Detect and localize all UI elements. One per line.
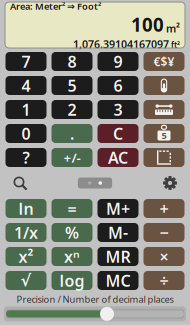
staticText: x² (18, 246, 33, 267)
button[interactable]: Area (143, 148, 184, 167)
staticText: − (159, 222, 168, 243)
button[interactable]: Weight (143, 124, 184, 143)
button[interactable]: 1/x (5, 223, 46, 242)
staticText: ÷ (159, 270, 168, 291)
button[interactable]: Settings (158, 174, 182, 192)
button[interactable]: MC (97, 271, 138, 290)
staticText: 100 (131, 12, 164, 37)
button[interactable]: ? (5, 148, 46, 167)
button[interactable]: + (143, 199, 184, 218)
button[interactable]: M+ (97, 199, 138, 218)
button[interactable]: xⁿ (51, 247, 92, 266)
staticText: xⁿ (64, 246, 80, 267)
staticText: ft² (171, 40, 180, 50)
staticText: 8 (67, 51, 76, 72)
staticText: 0 (21, 123, 30, 144)
staticText: 2 (67, 99, 76, 120)
button[interactable]: √ (5, 271, 46, 290)
staticText: 7 (21, 51, 30, 72)
button[interactable]: % (51, 223, 92, 242)
button[interactable]: €$¥ (143, 52, 184, 71)
staticText: % (65, 222, 79, 243)
staticText: MC (105, 270, 130, 291)
button[interactable]: 9 (97, 52, 138, 71)
button[interactable]: x² (5, 247, 46, 266)
staticText: Area: Meter² ⇒ Foot² (10, 0, 101, 12)
staticText: 5 (67, 75, 76, 96)
staticText: MR (105, 246, 130, 267)
staticText: C (113, 123, 123, 144)
staticText: log (59, 270, 84, 291)
button[interactable]: 7 (5, 52, 46, 71)
staticText: ? (22, 147, 29, 168)
button[interactable]: 6 (97, 76, 138, 95)
staticText: 6 (113, 75, 122, 96)
button[interactable]: × (143, 247, 184, 266)
button[interactable]: MR (97, 247, 138, 266)
staticText: = (67, 198, 76, 219)
button[interactable]: log (51, 271, 92, 290)
staticText: ln (18, 198, 33, 219)
staticText: 1 (21, 99, 30, 120)
staticText: 3 (113, 99, 122, 120)
button[interactable]: ÷ (143, 271, 184, 290)
button[interactable]: +/- (51, 148, 92, 167)
button[interactable]: . (51, 124, 92, 143)
staticText: €$¥ (153, 53, 174, 69)
button[interactable]: ln (5, 199, 46, 218)
staticText: Precision / Number of decimal places (16, 293, 173, 305)
button[interactable]: 3 (97, 100, 138, 119)
staticText: + (159, 198, 168, 219)
staticText: 1/x (14, 222, 38, 243)
button[interactable]: M- (97, 223, 138, 242)
staticText: +/- (63, 149, 80, 166)
staticText: 9 (113, 51, 122, 72)
button[interactable]: AC (97, 148, 138, 167)
button[interactable]: 8 (51, 52, 92, 71)
button[interactable]: 4 (5, 76, 46, 95)
staticText: 1,076.39104167097 (73, 37, 169, 51)
staticText: √ (20, 271, 31, 290)
button[interactable]: Length (143, 100, 184, 119)
button[interactable]: C (97, 124, 138, 143)
staticText: 4 (21, 75, 30, 96)
button[interactable]: 0 (5, 124, 46, 143)
staticText: × (159, 246, 168, 267)
button[interactable]: Temperature (143, 76, 184, 95)
button[interactable]: 5 (51, 76, 92, 95)
button[interactable]: 1 (5, 100, 46, 119)
button[interactable]: = (51, 199, 92, 218)
staticText: AC (108, 147, 128, 168)
button[interactable]: Search (8, 174, 32, 192)
staticText: . (70, 123, 74, 144)
staticText: M- (108, 222, 128, 243)
staticText: m² (166, 21, 180, 35)
button[interactable]: − (143, 223, 184, 242)
staticText: M+ (106, 198, 130, 219)
staticText: 5 (161, 129, 166, 142)
button[interactable]: 2 (51, 100, 92, 119)
